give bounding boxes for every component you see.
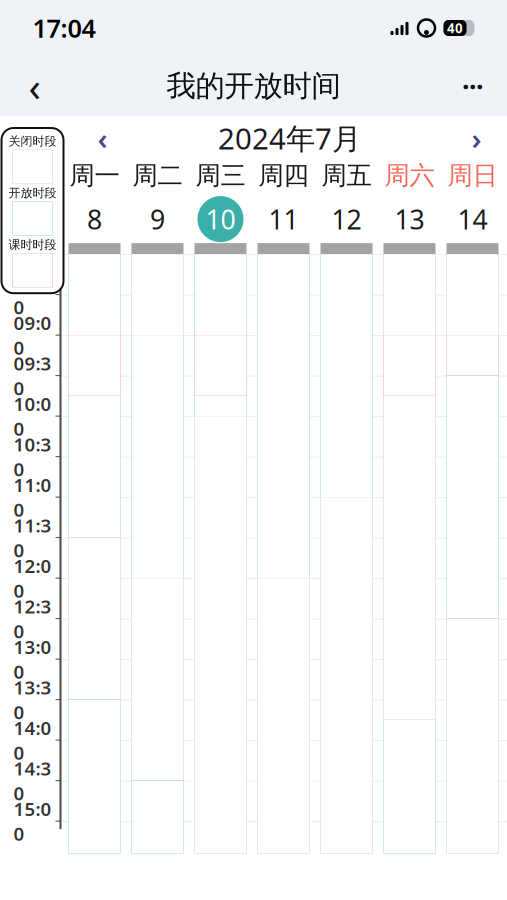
- staticText: 10: [205, 201, 235, 237]
- button[interactable]: 周日 14 schedule: [446, 243, 498, 853]
- button[interactable]: 周四 11 schedule: [257, 243, 309, 853]
- button[interactable]: More options: [446, 61, 498, 111]
- staticText: 14:00: [13, 715, 51, 765]
- staticText: 关闭时段: [8, 134, 56, 149]
- staticText: ›: [471, 118, 481, 157]
- staticText: 11: [268, 201, 298, 237]
- staticText: 11:00: [13, 472, 51, 522]
- button[interactable]: 周一 8 schedule: [68, 243, 120, 853]
- staticText: ···: [462, 68, 483, 104]
- staticText: 17:04: [32, 11, 95, 45]
- staticText: 12: [331, 201, 361, 237]
- staticText: 周日: [447, 160, 497, 191]
- button[interactable]: 周五 12 schedule: [320, 243, 372, 853]
- staticText: 13:00: [13, 634, 51, 684]
- staticText: 我的开放时间: [166, 68, 340, 104]
- button[interactable]: Next month: [454, 118, 498, 158]
- staticText: ‹: [28, 59, 40, 112]
- staticText: 周五: [321, 160, 371, 191]
- staticText: 周二: [132, 160, 182, 191]
- staticText: 13:30: [13, 675, 51, 724]
- staticText: 周六: [384, 160, 434, 191]
- staticText: 40: [447, 19, 463, 37]
- staticText: 08:30: [13, 270, 51, 319]
- staticText: 11:30: [13, 513, 51, 562]
- staticText: 周四: [258, 160, 308, 191]
- button[interactable]: 周三 10 schedule: [194, 243, 246, 853]
- button[interactable]: 8: [68, 195, 120, 243]
- staticText: 2024年7月: [218, 118, 361, 157]
- button[interactable]: 10: [194, 195, 246, 243]
- staticText: 10:00: [13, 391, 51, 441]
- staticText: 13: [394, 201, 424, 237]
- button[interactable]: 11: [257, 195, 309, 243]
- staticText: 10:30: [13, 432, 51, 481]
- staticText: 14: [457, 201, 487, 237]
- staticText: 开放时段: [8, 186, 56, 200]
- button[interactable]: 14: [446, 195, 498, 243]
- staticText: 15:00: [13, 796, 51, 846]
- staticText: 课时时段: [8, 237, 56, 252]
- button[interactable]: Back: [8, 61, 60, 111]
- staticText: 8: [87, 201, 102, 237]
- button[interactable]: 13: [383, 195, 435, 243]
- staticText: 14:30: [13, 756, 51, 805]
- staticText: 09:00: [13, 310, 51, 360]
- staticText: 08:00: [13, 229, 51, 279]
- staticText: ‹: [97, 118, 107, 157]
- staticText: 12:30: [13, 594, 51, 643]
- staticText: 周三: [195, 160, 245, 191]
- button[interactable]: 9: [131, 195, 183, 243]
- staticText: 12:00: [13, 553, 51, 603]
- button[interactable]: 周二 9 schedule: [131, 243, 183, 853]
- staticText: 9: [150, 201, 165, 237]
- staticText: 09:30: [13, 351, 51, 400]
- staticText: 周一: [69, 160, 119, 191]
- button[interactable]: Previous month: [80, 118, 124, 158]
- button[interactable]: 12: [320, 195, 372, 243]
- button[interactable]: 周六 13 schedule: [383, 243, 435, 853]
